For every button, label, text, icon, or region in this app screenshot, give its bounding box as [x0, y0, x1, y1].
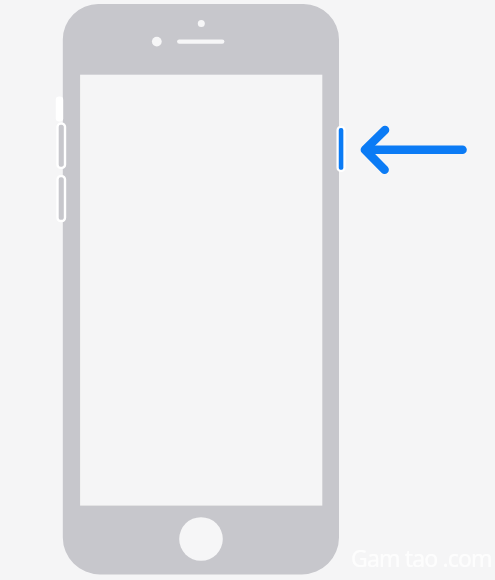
button[interactable]: Side power button: [330, 120, 352, 178]
button[interactable]: iPhone: [63, 4, 339, 575]
button[interactable]: Arrow pointing to the side button: [358, 123, 468, 177]
